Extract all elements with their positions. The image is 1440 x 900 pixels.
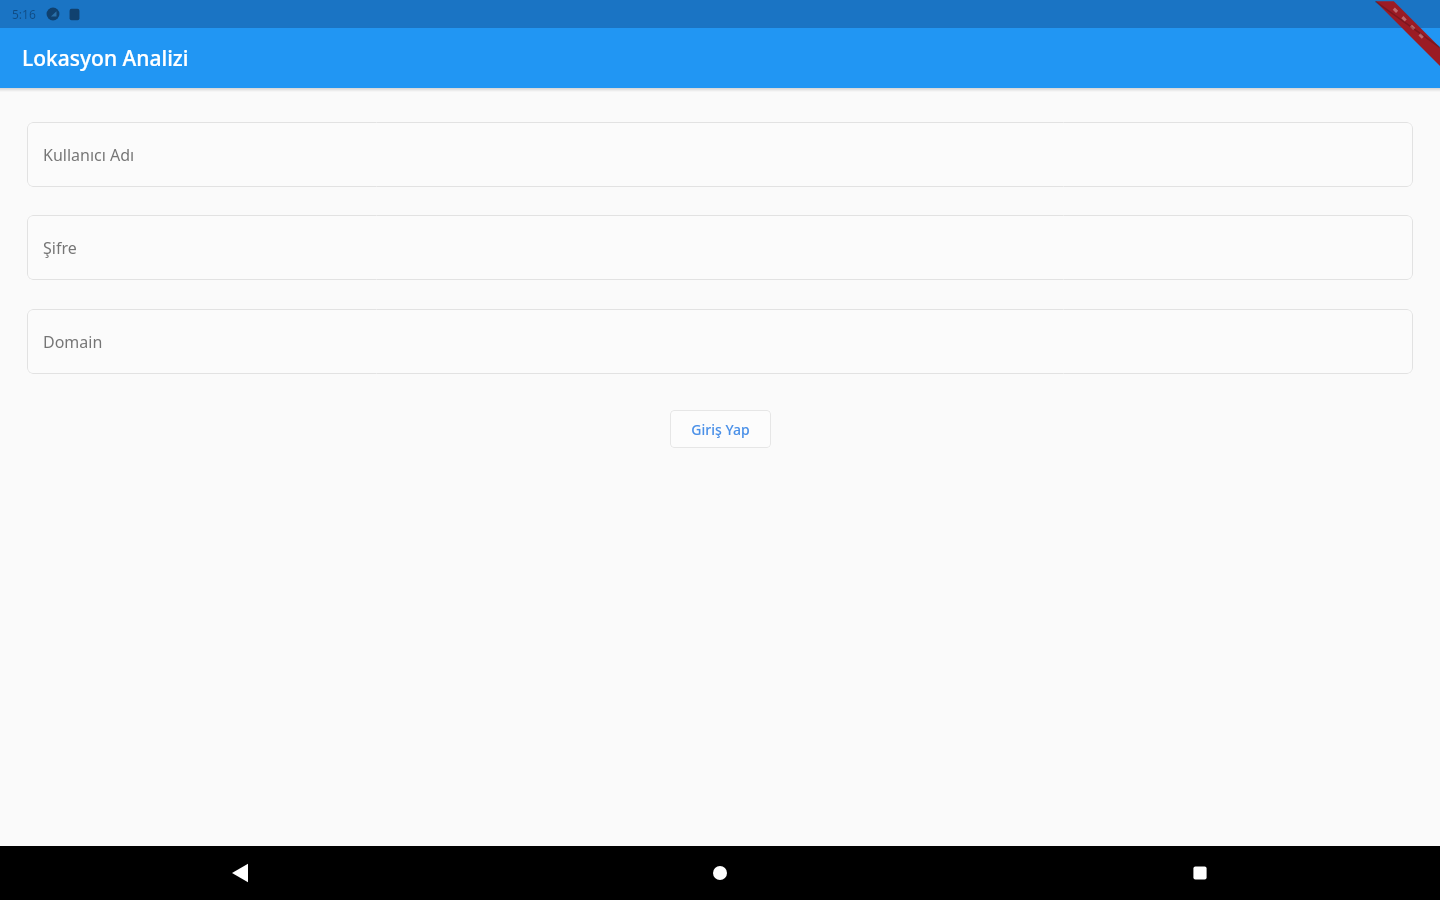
button[interactable]: Giriş Yap — [670, 410, 771, 448]
button[interactable]: Back — [0, 846, 480, 900]
staticText: Lokasyon Analizi — [22, 44, 189, 73]
staticText: 5:16 — [12, 6, 36, 22]
staticText: Kullanıcı Adı — [43, 144, 135, 166]
button[interactable]: Home — [480, 846, 960, 900]
staticText: Domain — [43, 331, 103, 353]
staticText: Şifre — [43, 237, 77, 259]
staticText: Giriş Yap — [691, 420, 750, 439]
button[interactable]: Domain — [27, 309, 1413, 374]
button[interactable]: Kullanıcı Adı — [27, 122, 1413, 187]
button[interactable]: Recents — [960, 846, 1440, 900]
button[interactable]: Şifre — [27, 215, 1413, 280]
